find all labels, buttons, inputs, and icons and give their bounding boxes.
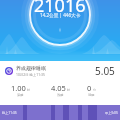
staticText: 10月2日 晚上11:35: [16, 72, 45, 77]
staticText: 1.00: [11, 83, 26, 93]
staticText: 清醒: [88, 93, 95, 97]
staticText: 分: [93, 88, 96, 92]
staticText: 深睡: [17, 93, 24, 97]
staticText: 养成规律睡眠: [16, 65, 46, 71]
staticText: 14.2公里 | 446大卡: [40, 12, 81, 18]
staticText: 21016: [34, 0, 86, 18]
staticText: 浅睡: [57, 93, 64, 97]
staticText: 0: [87, 83, 92, 93]
staticText: 时: [67, 88, 70, 92]
staticText: 时: [27, 88, 30, 92]
staticText: 晚上11:35: [2, 111, 17, 115]
staticText: 4.05: [51, 83, 66, 93]
staticText: 早上5:05: [105, 111, 118, 115]
button[interactable]: 晚上11:35: [0, 105, 120, 120]
button[interactable]: 养成规律睡眠: [0, 63, 120, 79]
staticText: 5.05: [95, 64, 115, 78]
